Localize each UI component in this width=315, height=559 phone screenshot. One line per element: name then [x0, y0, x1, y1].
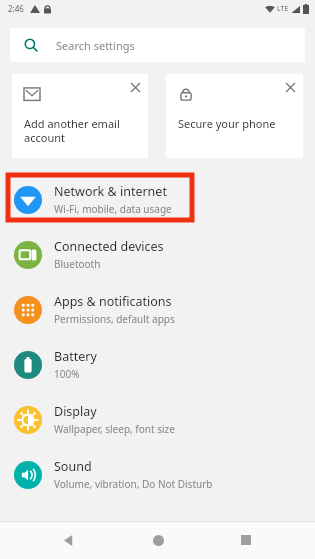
button[interactable]: Home [138, 521, 178, 559]
button[interactable]: Dismiss [12, 74, 148, 158]
staticText: Volume, vibration, Do Not Disturb [54, 477, 213, 491]
button[interactable]: Apps & notifications [0, 282, 315, 337]
staticText: Secure your phone [178, 116, 276, 131]
button[interactable]: Sound [0, 447, 315, 502]
button[interactable]: Recent apps [226, 521, 266, 559]
staticText: Add another email account [24, 116, 120, 145]
staticText: Connected devices [54, 238, 164, 255]
staticText: Apps & notifications [54, 293, 172, 310]
staticText: 2:46 [8, 3, 24, 14]
button[interactable]: Dismiss [166, 74, 303, 158]
button[interactable]: Connected devices [0, 227, 315, 282]
staticText: Sound [54, 458, 92, 475]
staticText: Battery [54, 348, 97, 365]
button[interactable]: Dismiss [281, 78, 299, 96]
button[interactable]: Dismiss [126, 78, 144, 96]
button[interactable]: Battery [0, 337, 315, 392]
button[interactable]: Display [0, 392, 315, 447]
staticText: Wi-Fi, mobile, data usage [54, 202, 172, 216]
staticText: LTE [277, 4, 289, 14]
staticText: Bluetooth [54, 257, 101, 271]
staticText: Permissions, default apps [54, 312, 175, 326]
staticText: Wallpaper, sleep, font size [54, 422, 175, 436]
staticText: Display [54, 403, 97, 420]
staticText: 100% [54, 367, 80, 381]
staticText: Search settings [56, 38, 135, 53]
button[interactable]: Search settings [10, 28, 305, 62]
staticText: Network & internet [54, 183, 167, 200]
button[interactable]: Back [49, 521, 89, 559]
button[interactable]: Network & internet [0, 172, 315, 227]
